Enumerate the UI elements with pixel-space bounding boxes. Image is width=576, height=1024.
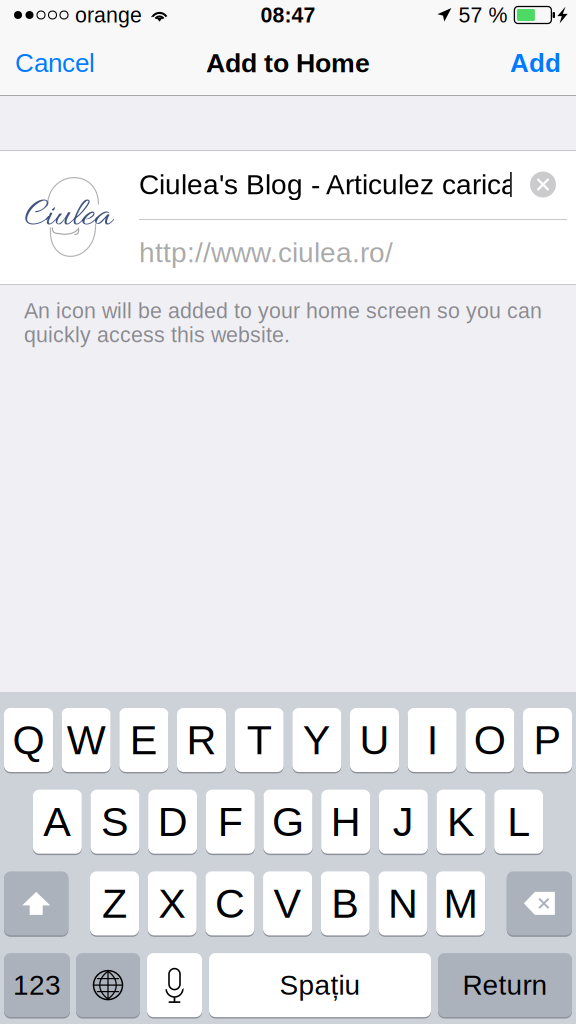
button[interactable]: E	[119, 706, 168, 773]
staticText: T	[247, 717, 272, 763]
staticText: Return	[462, 969, 547, 1001]
button[interactable]: P	[523, 706, 572, 773]
button[interactable]: O	[465, 706, 514, 773]
staticText: W	[67, 717, 106, 763]
staticText: Z	[102, 880, 127, 926]
staticText: A	[43, 799, 71, 845]
button[interactable]: F	[206, 788, 255, 855]
staticText: P	[533, 717, 561, 763]
button[interactable]: X	[148, 870, 197, 937]
button[interactable]: D	[148, 788, 197, 855]
button[interactable]: N	[378, 870, 427, 937]
button[interactable]: Shift	[4, 870, 68, 937]
button[interactable]: 123	[4, 952, 70, 1019]
staticText: F	[218, 799, 243, 845]
staticText: N	[388, 880, 418, 926]
button[interactable]: Z	[90, 870, 139, 937]
button[interactable]: A	[33, 788, 82, 855]
button[interactable]: L	[494, 788, 543, 855]
button[interactable]: S	[90, 788, 139, 855]
staticText: R	[186, 717, 216, 763]
button[interactable]: T	[235, 706, 284, 773]
staticText: V	[274, 880, 302, 926]
button[interactable]: Add	[495, 30, 576, 96]
staticText: http://www.ciulea.ro/	[139, 237, 393, 268]
button[interactable]: C	[205, 870, 254, 937]
button[interactable]: Cancel	[0, 30, 110, 96]
staticText: M	[444, 880, 478, 926]
staticText: E	[130, 717, 158, 763]
staticText: Ciulea's Blog - Articulez caricaturile v…	[139, 169, 576, 200]
staticText: I	[427, 717, 438, 763]
staticText: Add to Home	[206, 48, 370, 78]
button[interactable]: Delete	[507, 870, 572, 937]
staticText: 08:47	[260, 3, 315, 27]
button[interactable]: Dictate	[147, 952, 202, 1019]
staticText: C	[215, 880, 245, 926]
staticText: An icon will be added to your home scree…	[24, 299, 542, 347]
button[interactable]: H	[321, 788, 370, 855]
button[interactable]: B	[321, 870, 370, 937]
staticText: Spațiu	[279, 969, 360, 1001]
staticText: Cancel	[15, 48, 95, 77]
staticText: G	[272, 799, 304, 845]
staticText: J	[393, 799, 414, 845]
button[interactable]: W	[62, 706, 111, 773]
button[interactable]: M	[436, 870, 485, 937]
staticText: U	[359, 717, 389, 763]
button[interactable]: Return	[438, 952, 572, 1019]
staticText: Y	[303, 717, 331, 763]
button[interactable]: R	[177, 706, 226, 773]
staticText: K	[447, 799, 475, 845]
staticText: 123	[13, 969, 61, 1001]
button[interactable]: K	[436, 788, 485, 855]
button[interactable]: Next keyboard	[76, 952, 140, 1019]
staticText: L	[507, 799, 530, 845]
staticText: orange	[75, 3, 142, 27]
staticText: O	[474, 717, 506, 763]
staticText: Ciulea	[24, 191, 112, 241]
staticText: B	[331, 880, 359, 926]
staticText: H	[331, 799, 361, 845]
button[interactable]: I	[408, 706, 457, 773]
button[interactable]: J	[379, 788, 428, 855]
button[interactable]: Spațiu	[209, 952, 431, 1019]
button[interactable]: Y	[292, 706, 341, 773]
button[interactable]: G	[263, 788, 312, 855]
button[interactable]: Q	[4, 706, 53, 773]
button[interactable]: V	[263, 870, 312, 937]
staticText: 57 %	[458, 3, 507, 27]
staticText: S	[101, 799, 129, 845]
staticText: Q	[12, 717, 44, 763]
staticText: X	[158, 880, 186, 926]
staticText: D	[158, 799, 188, 845]
button[interactable]: Clear text	[519, 156, 567, 212]
staticText: Add	[510, 48, 561, 77]
button[interactable]: U	[350, 706, 399, 773]
